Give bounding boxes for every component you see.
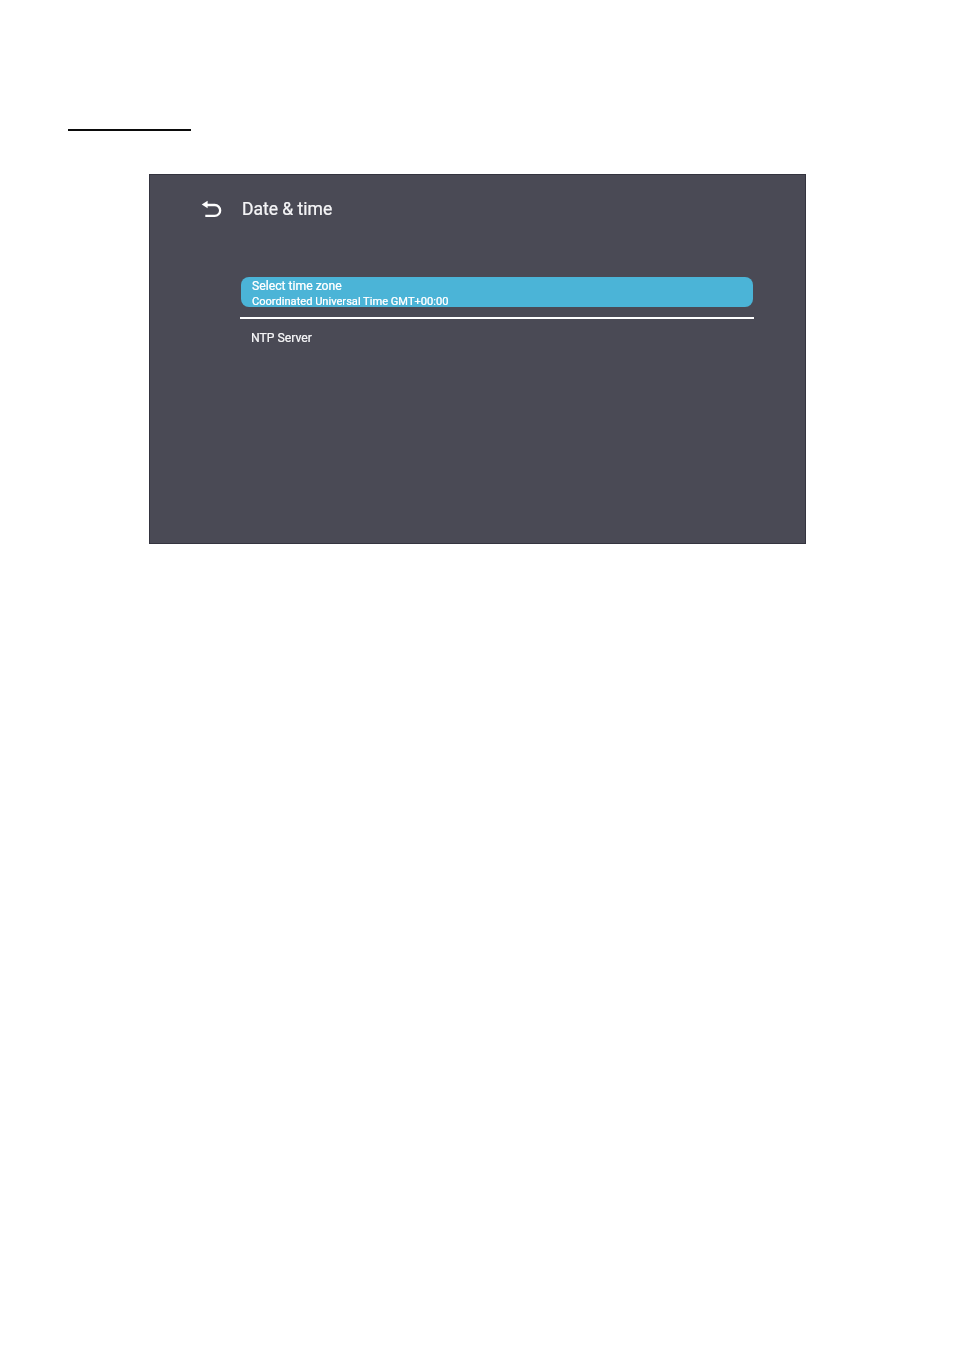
staticText: NTP Server [251, 331, 312, 345]
button[interactable]: Back [189, 187, 235, 233]
button[interactable]: Select time zone [241, 277, 753, 307]
staticText: Date & time [242, 199, 333, 220]
staticText: Coordinated Universal Time GMT+00:00 [252, 295, 449, 307]
staticText: Select time zone [252, 279, 342, 293]
button[interactable]: NTP Server [241, 323, 754, 351]
